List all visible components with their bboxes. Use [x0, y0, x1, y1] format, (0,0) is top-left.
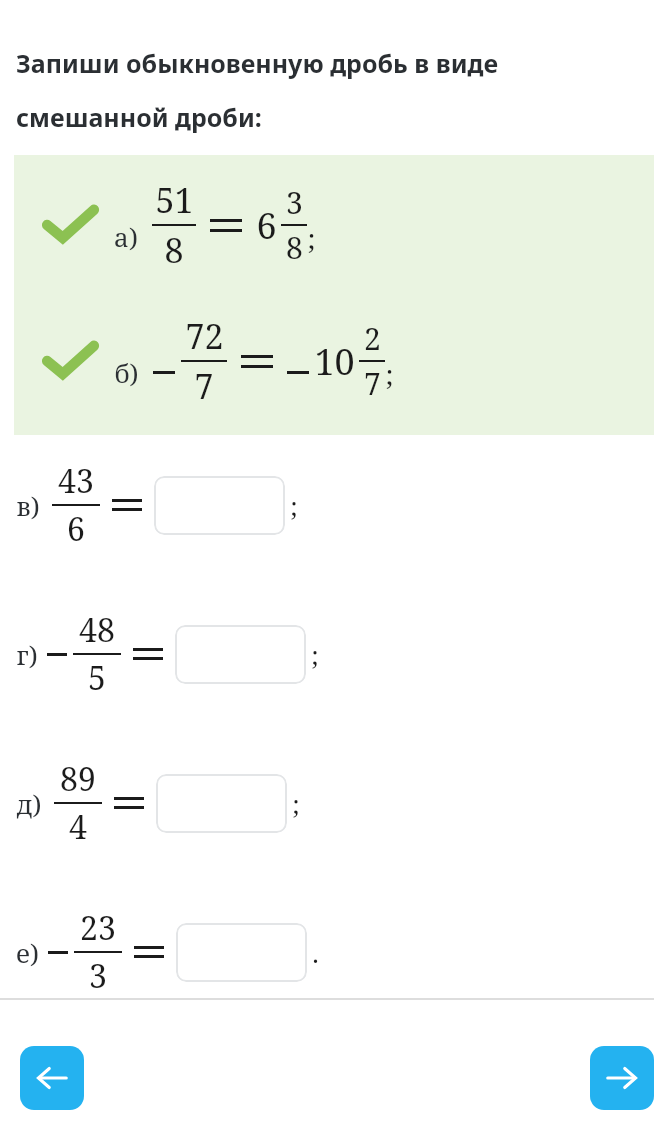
staticText: 3: [89, 954, 107, 998]
staticText: Запиши обыкновенную дробь в виде: [16, 46, 499, 80]
staticText: ;: [311, 637, 319, 672]
staticText: в): [16, 488, 40, 523]
staticText: 10: [314, 337, 355, 386]
button[interactable]: [154, 476, 285, 535]
button[interactable]: [176, 923, 307, 982]
staticText: е): [16, 935, 39, 970]
staticText: ;: [290, 488, 298, 523]
staticText: 23: [80, 906, 116, 950]
staticText: 6: [256, 201, 277, 250]
staticText: 8: [164, 227, 184, 273]
staticText: ;: [292, 786, 300, 821]
button[interactable]: Previous: [20, 1046, 84, 1110]
staticText: 2: [364, 318, 381, 359]
staticText: а): [114, 219, 138, 254]
staticText: д): [16, 786, 42, 821]
staticText: .: [312, 935, 319, 970]
staticText: 5: [88, 656, 106, 700]
button[interactable]: [175, 625, 306, 684]
staticText: 4: [69, 805, 87, 849]
staticText: 51: [155, 177, 194, 223]
button[interactable]: [156, 774, 287, 833]
staticText: смешанной дроби:: [16, 100, 262, 134]
staticText: г): [16, 637, 38, 672]
staticText: 3: [286, 182, 303, 223]
button[interactable]: Next: [590, 1046, 654, 1110]
staticText: 43: [58, 459, 94, 503]
staticText: 89: [60, 757, 96, 801]
staticText: 72: [185, 313, 224, 359]
staticText: ;: [385, 355, 394, 393]
staticText: 6: [67, 507, 85, 551]
staticText: 7: [364, 363, 381, 404]
staticText: 7: [194, 363, 214, 409]
staticText: 8: [286, 227, 303, 268]
staticText: б): [114, 355, 139, 390]
staticText: ;: [307, 219, 316, 257]
staticText: 48: [79, 608, 115, 652]
